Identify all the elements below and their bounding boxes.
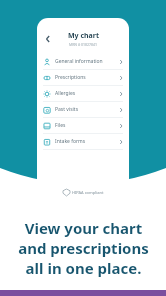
staticText: MRN # 01827841	[69, 42, 98, 47]
button[interactable]: Past visits	[37, 102, 129, 117]
button[interactable]: Back	[42, 33, 54, 45]
button[interactable]: Intake forms	[37, 134, 129, 149]
staticText: Allergies	[55, 90, 119, 97]
staticText: HIPAA compliant	[72, 190, 104, 195]
button[interactable]: Prescriptions	[37, 70, 129, 85]
staticText: Prescriptions	[55, 74, 119, 81]
staticText: Past visits	[55, 106, 119, 113]
button[interactable]: Files	[37, 118, 129, 133]
staticText: My chart	[68, 31, 99, 41]
staticText: Intake forms	[55, 138, 119, 145]
button[interactable]: General information	[37, 54, 129, 69]
staticText: General information	[55, 58, 119, 65]
button[interactable]: Allergies	[37, 86, 129, 101]
staticText: Files	[55, 122, 119, 129]
staticText: View your chart and prescriptions all in…	[18, 218, 149, 278]
